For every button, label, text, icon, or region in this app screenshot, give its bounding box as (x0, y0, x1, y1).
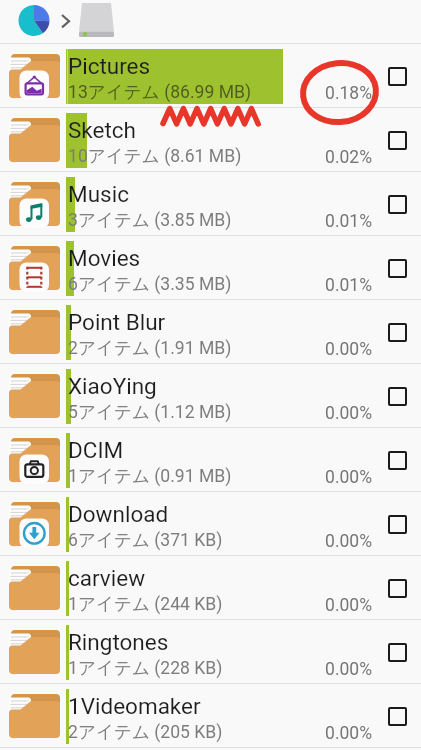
staticText: carview (68, 565, 146, 591)
button[interactable]: Sketch (0, 108, 421, 172)
button[interactable]: Download (0, 492, 421, 556)
staticText: 5アイテム (1.12 MB) (68, 401, 232, 423)
staticText: 1アイテム (228 KB) (68, 657, 223, 679)
staticText: Ringtones (68, 629, 169, 655)
staticText: Pictures (68, 53, 151, 79)
staticText: 2アイテム (1.91 MB) (68, 337, 232, 359)
button[interactable] (388, 707, 407, 726)
staticText: 10アイテム (8.61 MB) (68, 145, 242, 167)
button[interactable]: Movies (0, 236, 421, 300)
staticText: 0.00% (292, 467, 372, 488)
button[interactable] (388, 579, 407, 598)
staticText: 1アイテム (244 KB) (68, 593, 223, 615)
staticText: 0.00% (292, 339, 372, 360)
staticText: 1アイテム (0.91 MB) (68, 465, 232, 487)
staticText: 1Videomaker (68, 693, 201, 719)
button[interactable] (388, 259, 407, 278)
button[interactable] (388, 131, 407, 150)
staticText: Point Blur (68, 309, 166, 335)
button[interactable]: Pictures (0, 44, 421, 108)
staticText: 0.18% (292, 83, 372, 104)
staticText: 6アイテム (3.35 MB) (68, 273, 232, 295)
button[interactable] (388, 323, 407, 342)
button[interactable]: XiaoYing (0, 364, 421, 428)
staticText: 0.00% (292, 723, 372, 744)
button[interactable]: Point Blur (0, 300, 421, 364)
button[interactable] (388, 67, 407, 86)
staticText: Download (68, 501, 169, 527)
staticText: 13アイテム (86.99 MB) (68, 81, 252, 103)
staticText: 0.00% (292, 595, 372, 616)
button[interactable] (388, 195, 407, 214)
button[interactable]: Ringtones (0, 620, 421, 684)
staticText: DCIM (68, 437, 124, 463)
button[interactable] (388, 515, 407, 534)
staticText: 0.01% (292, 211, 372, 232)
staticText: 6アイテム (371 KB) (68, 529, 223, 551)
button[interactable]: carview (0, 556, 421, 620)
staticText: 0.00% (292, 403, 372, 424)
staticText: Sketch (68, 117, 137, 143)
button[interactable]: DCIM (0, 428, 421, 492)
staticText: Music (68, 181, 129, 207)
staticText: XiaoYing (68, 373, 157, 399)
button[interactable]: 1Videomaker (0, 684, 421, 748)
button[interactable] (388, 387, 407, 406)
staticText: 0.02% (292, 147, 372, 168)
staticText: 2アイテム (205 KB) (68, 721, 223, 743)
staticText: 0.00% (292, 659, 372, 680)
staticText: 0.00% (292, 531, 372, 552)
staticText: 3アイテム (3.85 MB) (68, 209, 232, 231)
button[interactable]: Music (0, 172, 421, 236)
staticText: Movies (68, 245, 141, 271)
button[interactable] (388, 451, 407, 470)
button[interactable] (388, 643, 407, 662)
staticText: 0.01% (292, 275, 372, 296)
